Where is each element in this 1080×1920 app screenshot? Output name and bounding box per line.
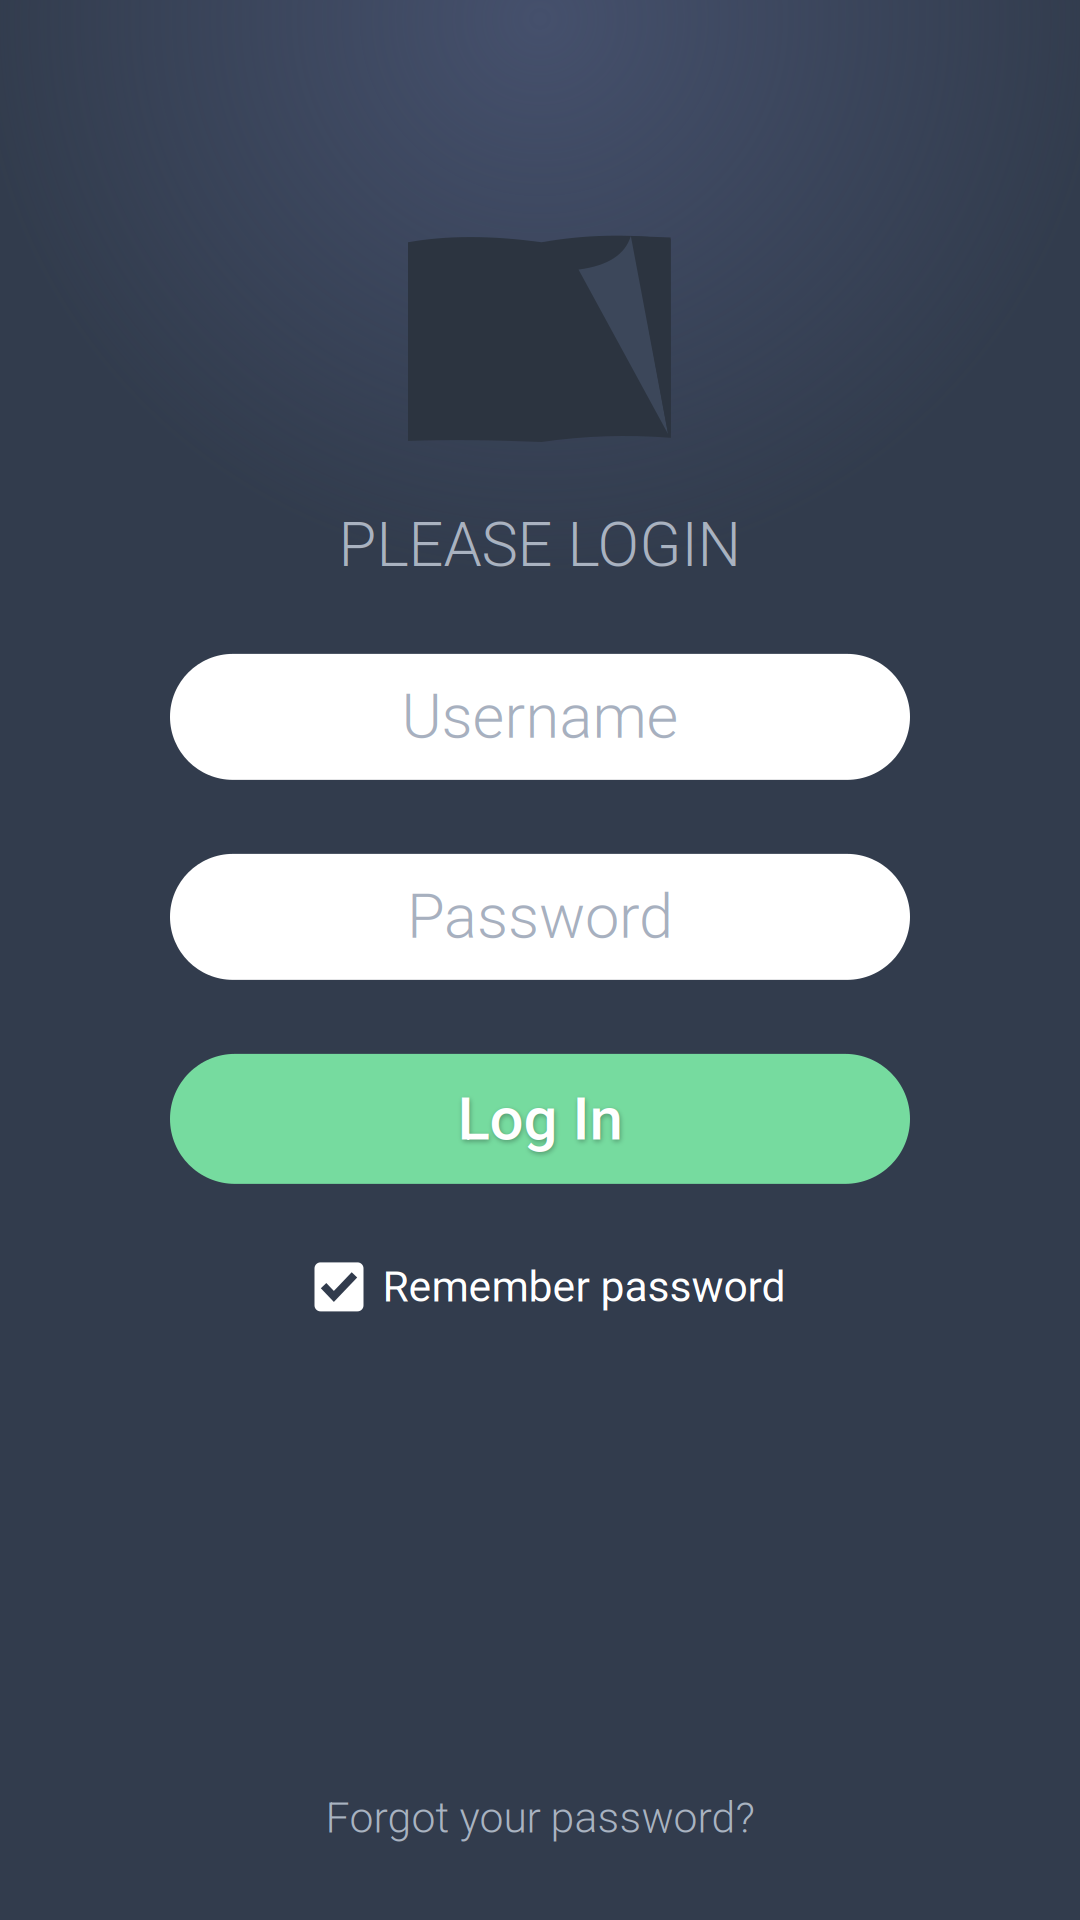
- staticText: PLEASE LOGIN: [338, 509, 741, 581]
- staticText: Username: [401, 681, 678, 753]
- staticText: Password: [407, 881, 673, 953]
- staticText: Forgot your password?: [325, 1793, 754, 1843]
- button[interactable]: Username: [170, 654, 910, 780]
- staticText: Remember password: [382, 1262, 785, 1312]
- staticText: Log In: [457, 1084, 622, 1154]
- button[interactable]: Log In: [170, 1054, 910, 1184]
- button[interactable]: Forgot your password?: [325, 1793, 754, 1843]
- button[interactable]: Remember password: [314, 1262, 785, 1312]
- button[interactable]: Password: [170, 854, 910, 980]
